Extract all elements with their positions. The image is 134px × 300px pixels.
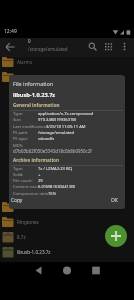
staticText: Last modification: [13,124,48,130]
staticText: Alarms [17,59,33,65]
staticText: libusb-1.0.23.7z [17,249,51,255]
button[interactable] [87,262,105,280]
staticText: 3/25/18 11:05:11 AM [46,124,86,130]
staticText: 12:49 [4,28,17,35]
button[interactable]: Podcasts [0,200,134,215]
staticText: FS type: [13,136,28,142]
button[interactable]: libusb-1.0.23.7z [0,245,134,260]
staticText: 0 [28,38,31,44]
button[interactable]: Ringtones [0,215,134,230]
button[interactable] [101,39,116,55]
staticText: /storage/emulated [28,46,68,52]
staticText: Content size: [13,184,38,190]
staticText: Ringtones [17,219,39,225]
staticText: Compression ratio: [13,191,50,197]
button[interactable] [118,39,131,55]
staticText: + [38,172,41,178]
staticText: /storage/emulated [38,130,75,136]
staticText: Podcasts [17,204,37,210]
staticText: d7b03b02f050e5343d18c0b8b0950c2f [13,148,92,154]
staticText: application/x-7z-compressed [38,111,94,117]
button[interactable] [3,39,19,55]
staticText: FS path: [13,130,29,136]
button[interactable]: 8.7z [0,230,134,245]
staticText: sdcardfs [38,136,55,142]
button[interactable] [105,225,127,247]
button[interactable] [30,262,48,280]
staticText: 6.01MB (6304413B) [38,184,76,190]
staticText: Archive information [13,157,59,163]
staticText: File count: [13,178,33,184]
staticText: 7z / LZMA2:23 BCJ [38,166,73,172]
staticText: 8.7z [17,234,26,240]
staticText: General information [13,102,60,108]
staticText: Type: [13,166,24,172]
staticText: File information [13,80,54,87]
staticText: 15% [48,191,57,197]
staticText: Copy [11,197,23,204]
button[interactable] [85,39,100,55]
staticText: Android [17,74,35,80]
staticText: Solid: [13,172,24,178]
button[interactable]: Copy [9,195,53,209]
staticText: MD5: [13,143,24,149]
staticText: Size: [13,117,22,123]
button[interactable] [58,262,76,280]
staticText: 970.34KB (993631B) [38,117,77,123]
staticText: libusb-1.0.23.7z [13,91,56,99]
staticText: Type: [13,111,24,117]
staticText: 29 [38,178,43,184]
staticText: OK [111,197,118,204]
button[interactable]: Android [0,70,134,85]
button[interactable]: Alarms [0,55,134,70]
button[interactable]: OK [103,195,125,209]
